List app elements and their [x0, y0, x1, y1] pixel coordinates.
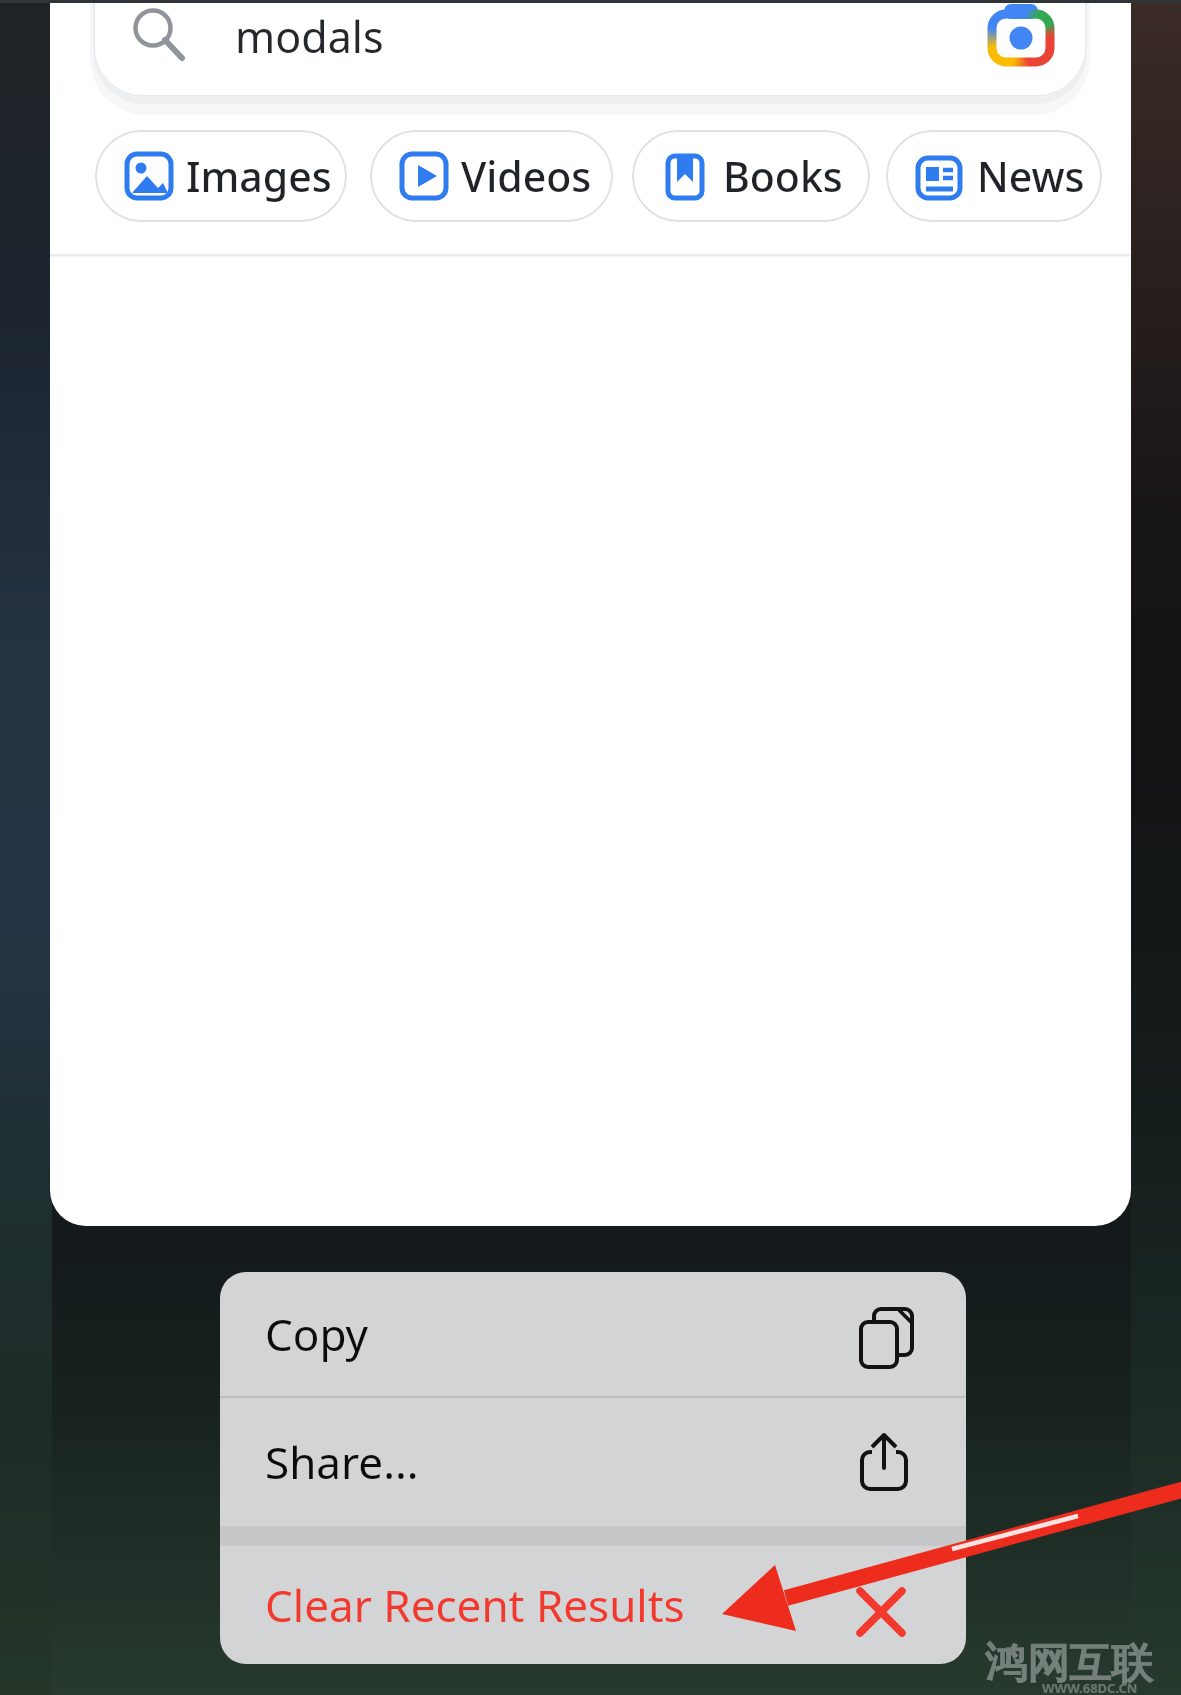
- staticText: Clear Recent Results: [265, 1575, 685, 1635]
- staticText: WWW.68DC.CN: [1042, 1679, 1138, 1695]
- button[interactable]: Books: [632, 130, 870, 222]
- staticText: Copy: [265, 1304, 369, 1364]
- button[interactable]: Copy: [220, 1272, 966, 1396]
- staticText: Images: [186, 148, 332, 204]
- button[interactable]: Clear Recent Results: [220, 1546, 966, 1664]
- staticText: Books: [723, 148, 843, 204]
- staticText: News: [977, 148, 1085, 204]
- staticText: modals: [235, 7, 384, 66]
- button[interactable]: [93, 0, 1087, 97]
- button[interactable]: Share...: [220, 1398, 966, 1526]
- staticText: Videos: [461, 148, 592, 204]
- button[interactable]: News: [886, 130, 1102, 222]
- staticText: Share...: [265, 1432, 419, 1492]
- button[interactable]: Videos: [370, 130, 613, 222]
- staticText: 鸿网互联: [985, 1638, 1153, 1691]
- button[interactable]: Images: [95, 130, 347, 222]
